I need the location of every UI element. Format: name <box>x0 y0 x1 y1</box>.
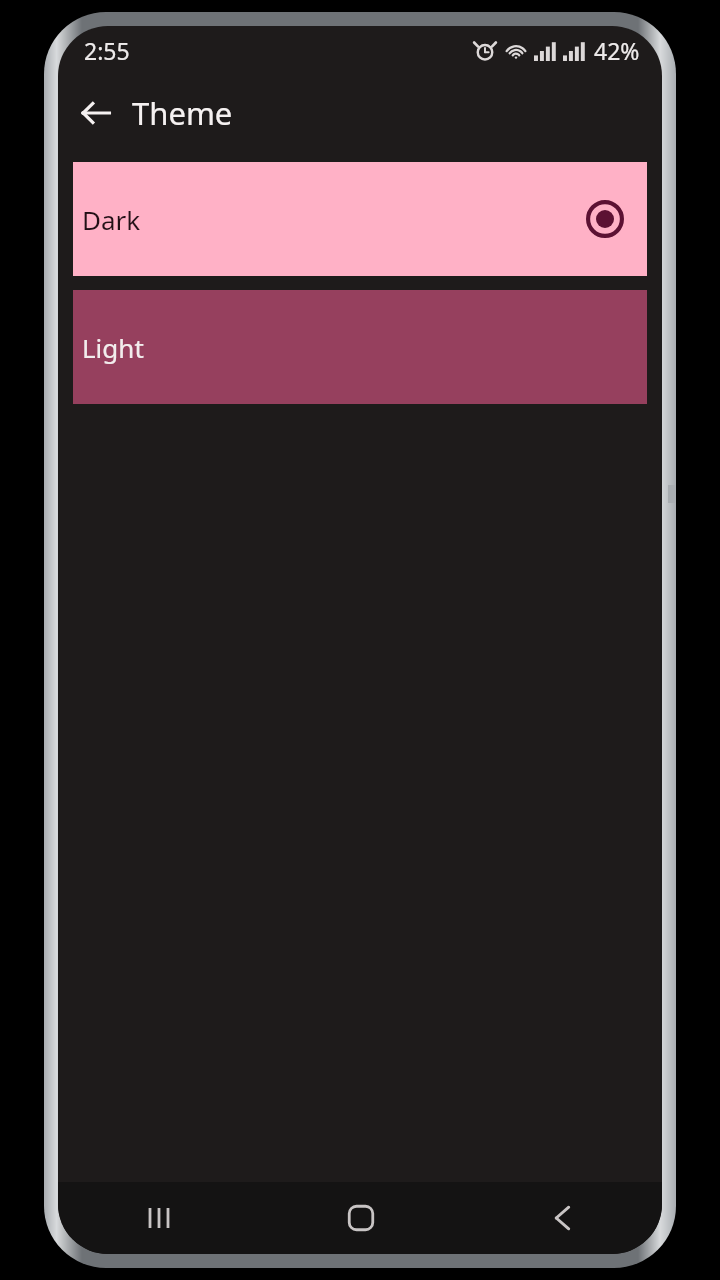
staticText: Dark <box>82 202 141 237</box>
staticText: Light <box>82 330 144 365</box>
button[interactable]: Recent apps <box>58 1182 260 1254</box>
other: Selected <box>585 199 625 239</box>
button[interactable]: Back <box>68 85 124 141</box>
button[interactable]: Home <box>260 1182 461 1254</box>
staticText: 2:55 <box>84 35 130 66</box>
button[interactable]: Back <box>461 1182 662 1254</box>
button[interactable]: Light <box>73 290 647 404</box>
staticText: Theme <box>132 92 233 134</box>
button[interactable]: Dark <box>73 162 647 276</box>
staticText: 42% <box>594 35 640 66</box>
